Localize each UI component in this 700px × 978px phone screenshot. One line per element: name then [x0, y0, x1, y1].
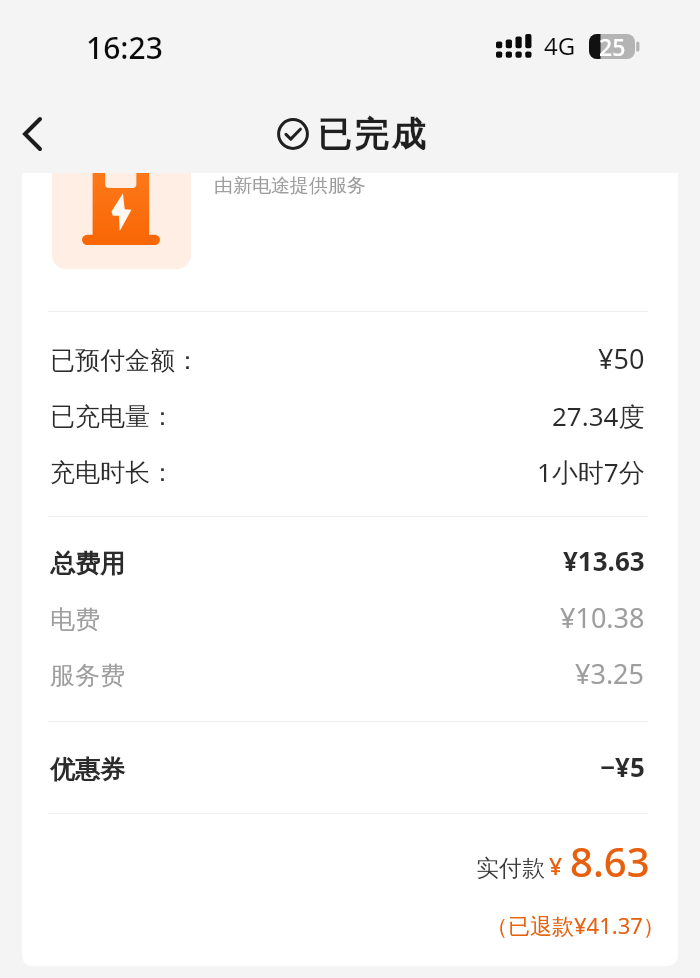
staticText: 已完成 — [316, 113, 427, 156]
other: Battery 25 percent — [589, 34, 639, 59]
staticText: 已充电量： — [50, 401, 175, 432]
staticText: 25 — [599, 31, 626, 56]
staticText: ¥ — [549, 850, 563, 881]
staticText: （已退款¥41.37） — [486, 910, 665, 940]
button[interactable]: 优惠券 — [22, 739, 678, 795]
staticText: ¥13.63 — [563, 543, 645, 578]
button[interactable]: 服务费 — [22, 645, 678, 701]
staticText: 电费 — [50, 604, 100, 635]
staticText: 27.34度 — [552, 398, 645, 434]
staticText: 优惠券 — [50, 754, 125, 785]
staticText: 已预付金额： — [50, 345, 200, 376]
staticText: ¥10.38 — [560, 599, 645, 636]
button[interactable]: 总费用 — [22, 533, 678, 589]
staticText: 实付款 — [476, 854, 545, 883]
staticText: 4G — [544, 29, 576, 62]
button[interactable]: Back — [0, 102, 64, 166]
button[interactable]: 已充电量： — [22, 386, 678, 442]
staticText: −¥5 — [600, 749, 645, 784]
staticText: 16:23 — [86, 27, 163, 68]
staticText: 由新电途提供服务 — [214, 174, 366, 198]
button[interactable]: 电费 — [22, 589, 678, 645]
staticText: ¥50 — [598, 340, 645, 377]
staticText: 充电时长： — [50, 457, 175, 488]
staticText: 8.63 — [570, 834, 650, 888]
other: Mobile signal strength — [496, 34, 532, 58]
staticText: 服务费 — [50, 660, 125, 691]
button[interactable]: 充电时长： — [22, 442, 678, 498]
staticText: ¥3.25 — [575, 655, 645, 692]
staticText: 总费用 — [50, 548, 125, 579]
button[interactable]: 已预付金额： — [22, 330, 678, 386]
staticText: 1小时7分 — [537, 454, 645, 490]
